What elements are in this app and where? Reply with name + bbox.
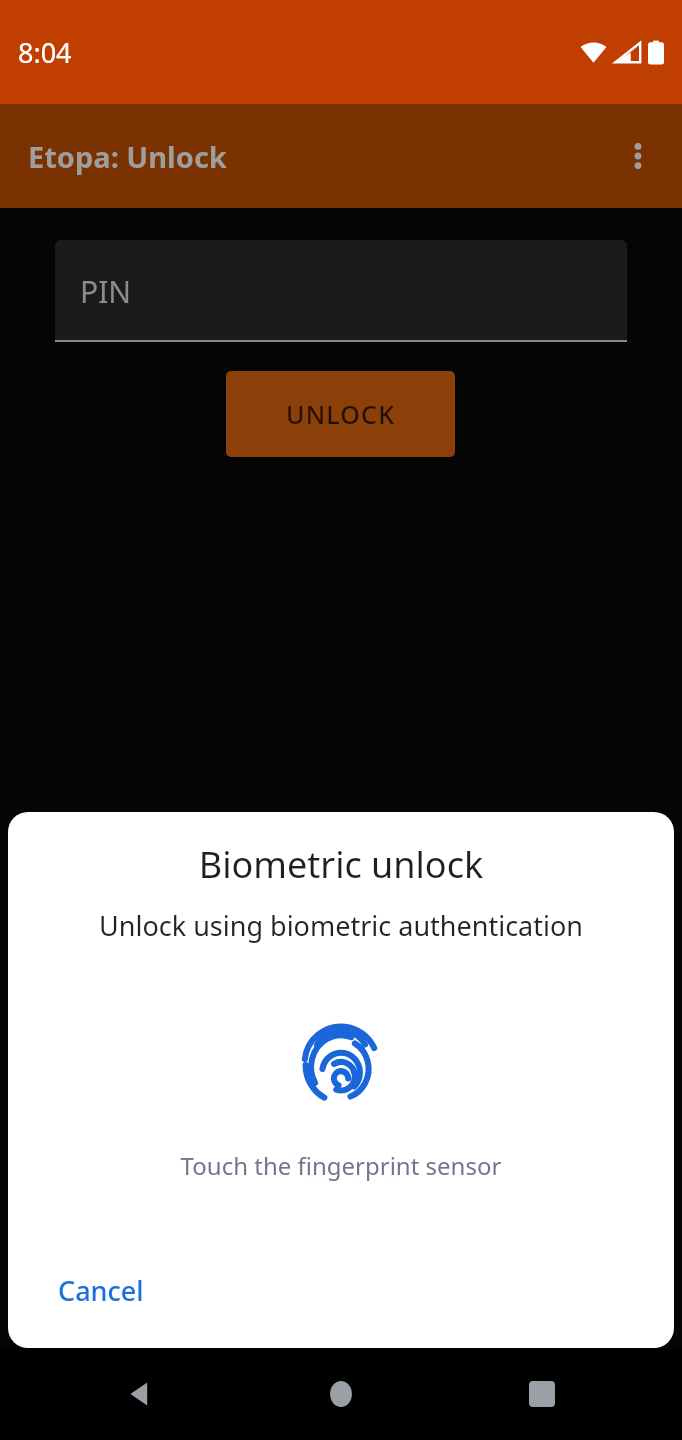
- staticText: Cancel: [58, 1272, 144, 1309]
- button[interactable]: Cancel: [40, 1260, 162, 1321]
- button[interactable]: Home: [309, 1362, 373, 1426]
- staticText: Touch the fingerprint sensor: [8, 1149, 674, 1182]
- button[interactable]: UNLOCK: [226, 371, 455, 457]
- button[interactable]: Back: [108, 1362, 172, 1426]
- staticText: Etopa: Unlock: [28, 137, 227, 176]
- staticText: UNLOCK: [286, 397, 396, 431]
- button[interactable]: More options: [610, 128, 666, 184]
- other: Fingerprint: [295, 1021, 387, 1113]
- staticText: PIN: [80, 271, 132, 312]
- staticText: 8:04: [18, 34, 72, 71]
- staticText: Biometric unlock: [8, 840, 674, 889]
- button[interactable]: PIN: [55, 240, 627, 342]
- button[interactable]: Recent apps: [510, 1362, 574, 1426]
- staticText: Unlock using biometric authentication: [8, 907, 674, 944]
